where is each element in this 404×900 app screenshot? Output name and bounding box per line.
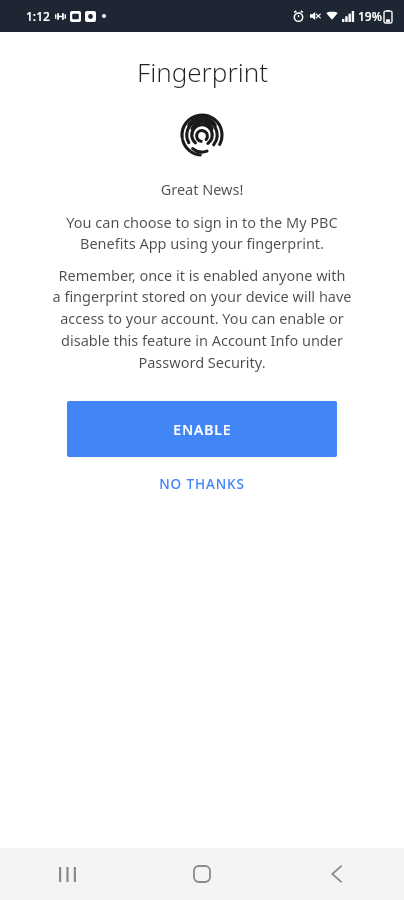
staticText: Great News!	[0, 179, 404, 199]
button[interactable]: ENABLE	[67, 401, 337, 457]
button[interactable]: Back	[269, 848, 404, 900]
button[interactable]: Recent apps	[0, 848, 134, 900]
staticText: You can choose to sign in to the My PBC …	[22, 212, 382, 254]
staticText: 1:12	[26, 8, 50, 24]
staticText: NO THANKS	[159, 475, 245, 493]
button[interactable]: Home	[134, 848, 269, 900]
button[interactable]: NO THANKS	[143, 469, 261, 499]
staticText: ENABLE	[173, 420, 232, 439]
staticText: Remember, once it is enabled anyone with…	[18, 265, 386, 373]
staticText: 19%	[358, 8, 382, 24]
staticText: Fingerprint	[137, 54, 268, 89]
